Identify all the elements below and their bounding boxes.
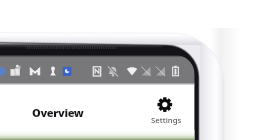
button[interactable]: Overview [32,105,84,120]
staticText: Settings [151,115,182,126]
staticText: Overview [32,105,84,120]
button[interactable]: Settings [151,115,182,126]
